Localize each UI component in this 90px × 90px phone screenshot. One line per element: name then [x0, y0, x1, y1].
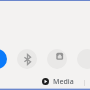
staticText: Media — [53, 77, 74, 87]
button[interactable]: Media — [42, 76, 76, 86]
button[interactable]: Flashlight — [47, 49, 67, 69]
button[interactable]: Bluetooth — [17, 49, 37, 69]
other: Flashlight — [0, 0, 90, 90]
button[interactable]: Internet — [0, 49, 7, 69]
button[interactable]: Do not disturb — [77, 49, 90, 69]
